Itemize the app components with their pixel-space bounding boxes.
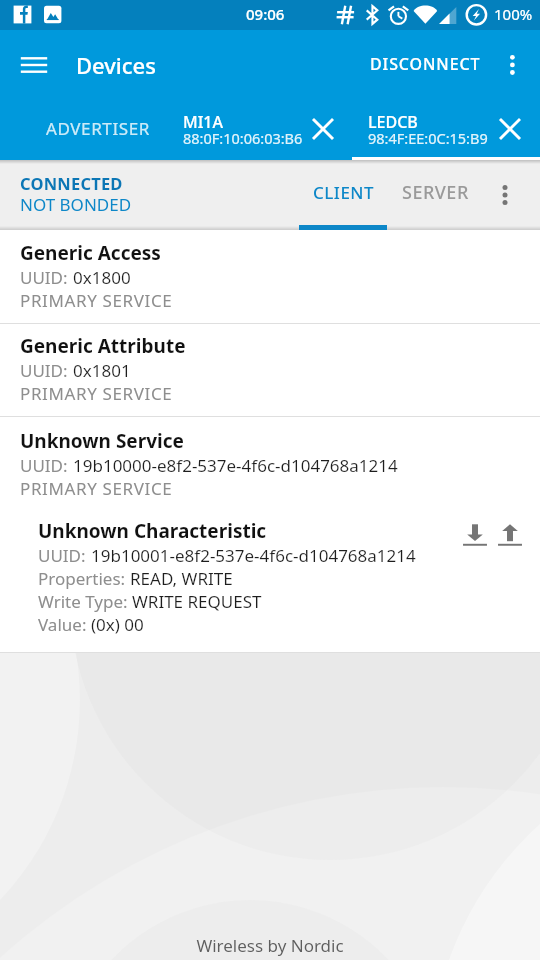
staticText: UUID:: [20, 454, 73, 477]
staticText: PRIMARY SERVICE: [20, 289, 173, 312]
staticText: 98:4F:EE:0C:15:B9: [368, 128, 488, 148]
staticText: CONNECTED: [20, 172, 123, 194]
staticText: Unknown Service: [20, 428, 184, 454]
button[interactable]: Unknown Service: [0, 416, 540, 652]
staticText: Generic Access: [20, 240, 161, 266]
staticText: (0x) 00: [91, 613, 144, 636]
staticText: Write Type:: [38, 590, 132, 613]
staticText: UUID:: [38, 544, 91, 567]
staticText: SERVER: [402, 180, 469, 205]
staticText: READ, WRITE: [130, 567, 233, 590]
button[interactable]: CLIENT: [296, 160, 392, 230]
button[interactable]: Read characteristic: [453, 514, 497, 558]
button[interactable]: Disconnect LEDCB: [488, 107, 532, 151]
button[interactable]: Disconnect MI1A: [301, 107, 345, 151]
staticText: Wireless by Nordic: [196, 934, 344, 957]
button[interactable]: Unknown Characteristic: [0, 416, 540, 652]
button[interactable]: DISCONNECT: [360, 43, 491, 85]
staticText: WRITE REQUEST: [132, 590, 262, 613]
button[interactable]: Generic Attribute: [0, 323, 540, 416]
staticText: 19b10001-e8f2-537e-4f6c-d104768a1214: [91, 544, 416, 567]
staticText: NOT BONDED: [20, 193, 132, 216]
button[interactable]: MI1A: [176, 96, 352, 160]
staticText: Generic Attribute: [20, 333, 186, 359]
staticText: PRIMARY SERVICE: [20, 477, 173, 500]
staticText: CLIENT: [313, 181, 375, 204]
staticText: Value:: [38, 613, 91, 636]
button[interactable]: Write characteristic: [488, 514, 532, 558]
staticText: 88:0F:10:06:03:B6: [183, 128, 303, 148]
button[interactable]: More options: [483, 173, 527, 217]
staticText: Properties:: [38, 567, 130, 590]
staticText: LEDCB: [368, 111, 418, 133]
staticText: Unknown Characteristic: [38, 518, 267, 544]
staticText: MI1A: [183, 111, 223, 133]
button[interactable]: Open navigation drawer: [11, 41, 59, 89]
staticText: UUID:: [20, 266, 73, 289]
staticText: Devices: [76, 50, 156, 80]
staticText: 100%: [494, 4, 533, 24]
staticText: ADVERTISER: [46, 117, 150, 140]
staticText: 19b10000-e8f2-537e-4f6c-d104768a1214: [73, 454, 398, 477]
staticText: 0x1800: [73, 266, 131, 289]
staticText: 0x1801: [73, 359, 131, 382]
button[interactable]: Generic Access: [0, 230, 540, 323]
button[interactable]: More options: [490, 40, 535, 85]
staticText: UUID:: [20, 359, 73, 382]
staticText: 09:06: [246, 4, 285, 24]
button[interactable]: LEDCB: [352, 96, 540, 160]
button[interactable]: SERVER: [398, 160, 472, 230]
button[interactable]: ADVERTISER: [0, 96, 176, 160]
staticText: DISCONNECT: [370, 53, 481, 75]
staticText: PRIMARY SERVICE: [20, 382, 173, 405]
